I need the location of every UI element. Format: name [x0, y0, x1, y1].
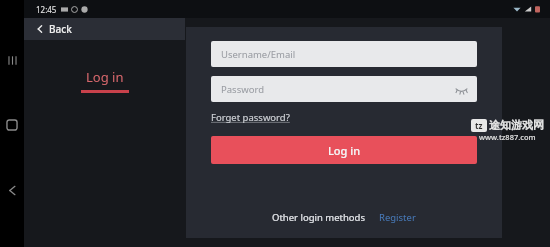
button[interactable]: Register: [379, 211, 416, 224]
button[interactable]: Other login methods: [272, 211, 365, 224]
button[interactable]: Log in: [71, 66, 139, 95]
staticText: Password: [221, 83, 264, 96]
staticText: 12:45: [36, 4, 57, 15]
button[interactable]: Back: [0, 178, 24, 202]
button[interactable]: Recent apps: [0, 48, 24, 72]
staticText: tz: [475, 120, 483, 131]
staticText: Log in: [328, 143, 361, 158]
button[interactable]: Back: [24, 18, 185, 40]
button[interactable]: Password: [211, 76, 477, 102]
staticText: Log in: [86, 68, 124, 86]
staticText: www.tz887.com: [479, 132, 536, 142]
staticText: 途知游戏网: [489, 118, 544, 132]
button[interactable]: Forget password?: [211, 111, 290, 124]
staticText: Back: [49, 22, 72, 36]
button[interactable]: Username/Email: [211, 41, 477, 67]
button[interactable]: Home: [0, 113, 24, 137]
button[interactable]: Show password: [453, 81, 469, 97]
staticText: Username/Email: [221, 48, 296, 61]
button[interactable]: Log in: [211, 136, 477, 164]
